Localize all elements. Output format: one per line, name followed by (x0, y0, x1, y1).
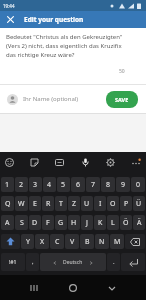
button[interactable] (81, 158, 90, 167)
staticText: 50 (119, 68, 125, 75)
button[interactable]: K (94, 215, 106, 230)
button[interactable]: 3 (29, 177, 42, 192)
button[interactable]: 4 (43, 177, 56, 192)
staticText: K (98, 218, 103, 228)
button[interactable]: G (55, 215, 67, 230)
button[interactable] (121, 253, 145, 271)
staticText: T (59, 199, 63, 209)
staticText: Q (5, 199, 11, 209)
button[interactable]: C (50, 234, 64, 249)
button[interactable]: , (26, 253, 39, 271)
staticText: Z (72, 199, 77, 209)
button[interactable]: 1 (1, 177, 14, 192)
staticText: F (46, 218, 50, 228)
staticText: Deutsch (63, 259, 83, 266)
button[interactable]: 0 (131, 177, 145, 192)
button[interactable]: R (42, 196, 54, 211)
staticText: 2 (19, 180, 24, 190)
button[interactable]: E (29, 196, 41, 211)
staticText: 19:44 (3, 3, 15, 9)
button[interactable]: F (42, 215, 54, 230)
button[interactable]: Z (68, 196, 80, 211)
button[interactable] (69, 284, 77, 292)
button[interactable] (106, 158, 115, 167)
staticText: P (124, 199, 129, 209)
button[interactable] (1, 234, 20, 249)
staticText: N (99, 237, 105, 247)
button[interactable]: S (15, 215, 28, 230)
button[interactable] (131, 158, 141, 168)
button[interactable] (108, 284, 116, 292)
button[interactable]: Y (21, 234, 34, 249)
button[interactable]: 8 (101, 177, 115, 192)
button[interactable]: 5 (57, 177, 70, 192)
staticText: . (113, 258, 115, 266)
button[interactable]: 7 (86, 177, 100, 192)
button[interactable]: SAVE (106, 91, 138, 108)
button[interactable] (125, 234, 145, 249)
button[interactable]: M (110, 234, 124, 249)
button[interactable]: V (65, 234, 79, 249)
staticText: I (99, 199, 102, 209)
staticText: Ihr Name (optional) (23, 95, 79, 103)
button[interactable]: !#1 (1, 253, 25, 271)
staticText: X (40, 237, 45, 247)
staticText: 0 (136, 180, 141, 190)
button[interactable]: Deutsch (40, 253, 106, 271)
staticText: M (114, 237, 121, 247)
staticText: SAVE (115, 96, 129, 103)
button[interactable]: Ü (133, 196, 145, 211)
staticText: E (33, 199, 37, 209)
button[interactable]: Ä (133, 215, 145, 230)
button[interactable]: Ö (120, 215, 132, 230)
button[interactable]: P (120, 196, 132, 211)
button[interactable]: L (107, 215, 119, 230)
staticText: 4 (47, 180, 52, 190)
button[interactable]: . (107, 253, 120, 271)
button[interactable]: N (95, 234, 109, 249)
staticText: L (111, 218, 115, 228)
button[interactable] (5, 158, 14, 167)
staticText: Y (26, 237, 30, 247)
button[interactable]: B (80, 234, 94, 249)
button[interactable]: W (15, 196, 28, 211)
button[interactable] (55, 158, 64, 167)
staticText: U (84, 199, 90, 209)
staticText: W (18, 199, 25, 209)
staticText: 1 (5, 180, 10, 190)
button[interactable]: U (81, 196, 93, 211)
button[interactable]: 2 (15, 177, 28, 192)
button[interactable]: T (55, 196, 67, 211)
staticText: G (58, 218, 64, 228)
button[interactable]: H (68, 215, 80, 230)
button[interactable]: Q (1, 196, 14, 211)
staticText: Ü (136, 199, 142, 209)
staticText: B (85, 237, 90, 247)
button[interactable] (30, 284, 38, 292)
staticText: Edit your question (24, 15, 84, 24)
staticText: Ä (137, 218, 142, 228)
staticText: 8 (106, 180, 111, 190)
staticText: 6 (76, 180, 81, 190)
button[interactable]: J (81, 215, 93, 230)
button[interactable]: X (35, 234, 49, 249)
staticText: S (20, 218, 24, 228)
button[interactable] (30, 158, 39, 167)
staticText: Bedeutet "Christus als den Gekreuzigten"… (6, 33, 123, 59)
staticText: R (46, 199, 51, 209)
staticText: 5 (61, 180, 66, 190)
button[interactable]: O (107, 196, 119, 211)
staticText: C (55, 237, 60, 247)
button[interactable]: 9 (116, 177, 130, 192)
staticText: D (32, 218, 38, 228)
staticText: H (71, 218, 77, 228)
staticText: V (70, 237, 75, 247)
staticText: Ö (123, 218, 129, 228)
button[interactable] (7, 16, 14, 23)
button[interactable]: I (94, 196, 106, 211)
staticText: , (32, 258, 34, 266)
button[interactable]: D (29, 215, 41, 230)
button[interactable]: 6 (71, 177, 85, 192)
button[interactable]: A (1, 215, 14, 230)
staticText: O (110, 199, 116, 209)
